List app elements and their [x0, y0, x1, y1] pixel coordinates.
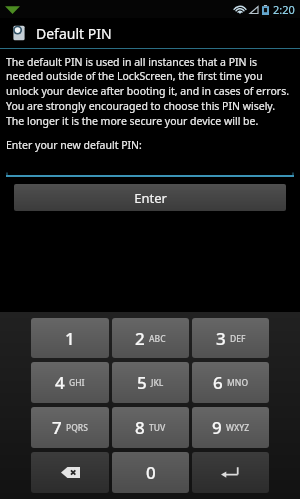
staticText: Enter — [134, 189, 167, 207]
button[interactable]: 1 — [31, 318, 109, 358]
button[interactable]: 8 — [112, 407, 189, 448]
staticText: ABC — [149, 333, 166, 345]
staticText: DEF — [230, 333, 246, 345]
staticText: PQRS — [66, 422, 88, 434]
staticText: 1 — [65, 327, 75, 350]
button[interactable]: 6 — [192, 362, 269, 403]
staticText: 2 — [135, 327, 145, 350]
staticText: 8 — [135, 416, 145, 439]
staticText: 7 — [52, 416, 62, 439]
button[interactable]: 3 — [192, 318, 269, 358]
staticText: 2:20 — [273, 2, 295, 17]
button[interactable]: Backspace — [31, 452, 109, 493]
button[interactable]: Enter — [14, 184, 286, 211]
staticText: WXYZ — [226, 422, 250, 434]
button[interactable]: 2 — [112, 318, 189, 358]
button[interactable]: 5 — [112, 362, 189, 403]
staticText: 4 — [55, 371, 65, 394]
staticText: 3 — [216, 327, 226, 350]
button[interactable]: Enter — [192, 452, 269, 493]
staticText: JKL — [151, 377, 164, 389]
staticText: 5 — [137, 371, 147, 394]
staticText: GHI — [69, 377, 85, 389]
staticText: 0 — [146, 461, 156, 484]
staticText: Enter your new default PIN: — [6, 138, 142, 152]
staticText: Default PIN — [36, 24, 112, 43]
button[interactable]: 9 — [192, 407, 269, 448]
staticText: TUV — [149, 422, 166, 434]
button[interactable]: 0 — [112, 452, 189, 493]
button[interactable] — [6, 160, 294, 178]
staticText: 6 — [213, 371, 223, 394]
staticText: MNO — [227, 377, 249, 389]
button[interactable]: 7 — [31, 407, 109, 448]
staticText: The default PIN is used in all instances… — [6, 55, 294, 128]
staticText: 9 — [212, 416, 222, 439]
button[interactable]: 4 — [31, 362, 109, 403]
